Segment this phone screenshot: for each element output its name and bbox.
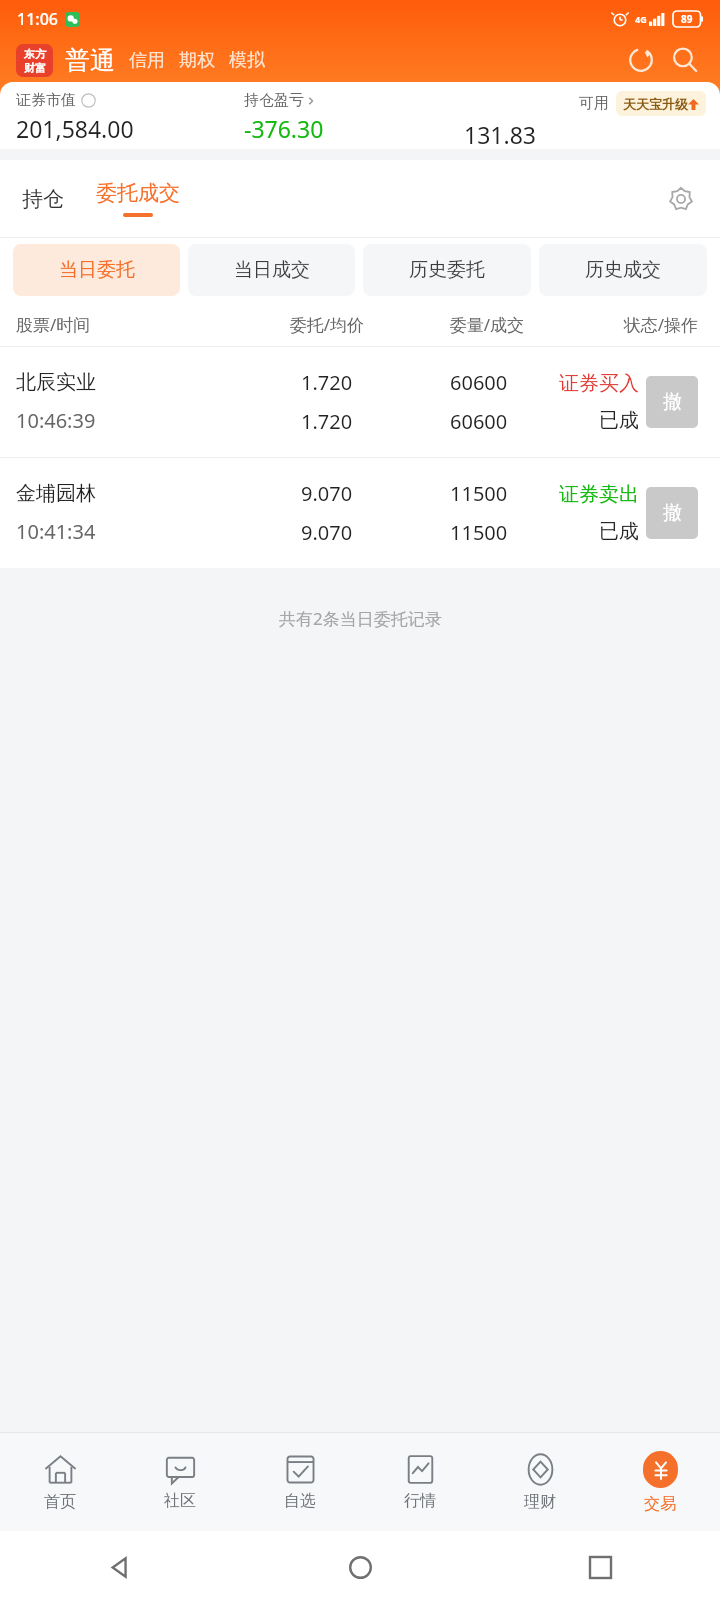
button[interactable]: 东方 [16, 44, 53, 77]
button[interactable]: 当日委托 [13, 244, 180, 296]
staticText: 已成 [599, 519, 639, 544]
staticText: 社区 [164, 1491, 196, 1511]
staticText: 委托/均价 [197, 313, 364, 336]
button[interactable]: 历史成交 [539, 244, 707, 296]
staticText: 89 [681, 12, 693, 26]
button[interactable]: 持仓 [18, 186, 68, 212]
staticText: 10:46:39 [16, 407, 96, 434]
staticText: 当日委托 [59, 258, 135, 282]
button[interactable]: 社区 [120, 1433, 240, 1531]
staticText: 期权 [179, 49, 215, 72]
button[interactable]: Search [666, 41, 704, 79]
staticText: 9.070 [301, 519, 353, 546]
staticText: 证券卖出 [559, 482, 639, 507]
button[interactable]: Settings [664, 182, 698, 216]
staticText: 自选 [284, 1491, 316, 1511]
staticText: 持仓 [22, 186, 64, 212]
staticText: 东方 [24, 47, 46, 61]
staticText: 60600 [450, 369, 508, 396]
staticText: 持仓盈亏 [244, 91, 304, 110]
staticText: 北辰实业 [16, 370, 96, 395]
staticText: 当日成交 [234, 258, 310, 282]
staticText: 1.720 [301, 408, 353, 435]
button[interactable]: 北辰实业 [0, 347, 720, 457]
button[interactable]: 天天宝升级 [616, 91, 706, 116]
staticText: 首页 [44, 1492, 76, 1512]
button[interactable]: 行情 [360, 1433, 480, 1531]
button[interactable]: 委托成交 [92, 180, 184, 217]
staticText: 11500 [450, 519, 508, 546]
staticText: 理财 [524, 1492, 556, 1512]
button[interactable]: 撤 [646, 487, 698, 539]
staticText: 撤 [663, 501, 682, 525]
staticText: 状态/操作 [524, 313, 698, 336]
staticText: 131.83 [464, 119, 536, 149]
button[interactable]: 历史委托 [363, 244, 531, 296]
staticText: 委托成交 [96, 180, 180, 206]
staticText: -376.30 [244, 113, 324, 144]
staticText: 10:41:34 [16, 518, 96, 545]
staticText: 股票/时间 [16, 313, 197, 336]
staticText: 1.720 [301, 369, 353, 396]
staticText: 财富 [24, 61, 46, 75]
staticText: 11500 [450, 480, 508, 507]
button[interactable]: 撤 [646, 376, 698, 428]
staticText: 信用 [129, 49, 165, 72]
staticText: 已成 [599, 408, 639, 433]
button[interactable]: 当日成交 [188, 244, 355, 296]
button[interactable]: 模拟 [229, 49, 265, 72]
staticText: 普通 [65, 45, 115, 76]
staticText: 历史成交 [585, 258, 661, 282]
staticText: 证券市值 [16, 91, 76, 110]
staticText: 天天宝升级 [623, 96, 688, 112]
button[interactable]: 交易 [600, 1433, 720, 1531]
button[interactable]: 期权 [179, 49, 215, 72]
staticText: 交易 [644, 1494, 676, 1514]
staticText: 共有2条当日委托记录 [279, 607, 442, 630]
staticText: 9.070 [301, 480, 353, 507]
staticText: 模拟 [229, 49, 265, 72]
staticText: 可用 [579, 94, 609, 113]
staticText: 60600 [450, 408, 508, 435]
staticText: 委量/成交 [364, 313, 524, 336]
button[interactable]: 首页 [0, 1433, 120, 1531]
button[interactable]: 自选 [240, 1433, 360, 1531]
staticText: 4G [635, 13, 647, 25]
staticText: 11:06 [17, 8, 58, 30]
staticText: 证券买入 [559, 371, 639, 396]
button[interactable]: 普通 [65, 45, 115, 76]
button[interactable]: Refresh [622, 41, 660, 79]
button[interactable]: 理财 [480, 1433, 600, 1531]
staticText: 201,584.00 [16, 113, 134, 144]
staticText: 历史委托 [409, 258, 485, 282]
staticText: 金埔园林 [16, 481, 96, 506]
staticText: 撤 [663, 390, 682, 414]
button[interactable]: 信用 [129, 49, 165, 72]
button[interactable]: 证券市值 [0, 82, 720, 149]
button[interactable]: 金埔园林 [0, 458, 720, 568]
staticText: 行情 [404, 1491, 436, 1511]
